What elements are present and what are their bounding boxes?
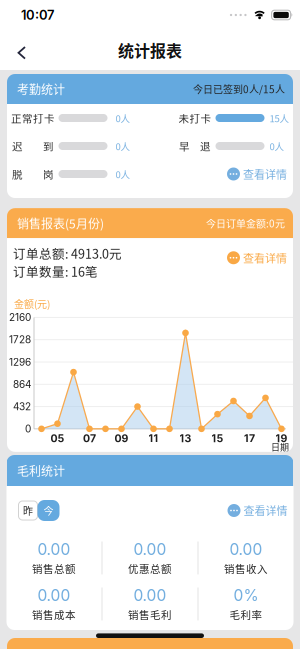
staticText: 0人 bbox=[115, 139, 130, 153]
staticText: 昨 bbox=[23, 503, 33, 518]
staticText: 优惠总额 bbox=[128, 561, 172, 576]
staticText: 864 bbox=[13, 378, 31, 390]
staticText: 查看详情 bbox=[243, 250, 287, 266]
staticText: 2160 bbox=[9, 311, 31, 323]
staticText: 13 bbox=[179, 432, 191, 445]
staticText: 正常打卡 bbox=[11, 110, 55, 126]
staticText: 销售成本 bbox=[32, 607, 76, 622]
button[interactable]: 查看详情 bbox=[227, 250, 287, 266]
staticText: 查看详情 bbox=[243, 166, 287, 182]
staticText: 1728 bbox=[9, 334, 31, 346]
staticText: 17 bbox=[244, 432, 255, 445]
staticText: 销售毛利 bbox=[128, 607, 172, 622]
staticText: 统计报表 bbox=[118, 38, 182, 62]
staticText: 销售总额 bbox=[32, 561, 76, 576]
staticText: 10:07 bbox=[21, 7, 54, 23]
staticText: 19 bbox=[275, 432, 287, 445]
staticText: 1296 bbox=[9, 356, 31, 368]
staticText: 退 bbox=[200, 138, 211, 154]
staticText: 未打卡 bbox=[178, 110, 211, 126]
staticText: 今 bbox=[43, 503, 53, 518]
staticText: 0人 bbox=[115, 167, 130, 181]
staticText: 0 bbox=[25, 423, 31, 435]
staticText: 05 bbox=[50, 432, 64, 445]
staticText: 15人 bbox=[269, 111, 289, 125]
staticText: 07 bbox=[83, 432, 96, 445]
button[interactable]: 今 bbox=[37, 500, 59, 521]
staticText: 到 bbox=[43, 138, 54, 154]
staticText: 0人 bbox=[269, 139, 284, 153]
staticText: 今日已签到0人/15人 bbox=[193, 82, 285, 96]
staticText: 0人 bbox=[115, 111, 130, 125]
staticText: 432 bbox=[13, 400, 31, 413]
staticText: 早 bbox=[179, 138, 190, 154]
staticText: 0.00 bbox=[229, 540, 262, 559]
staticText: 订单数量: 16笔 bbox=[13, 262, 98, 280]
staticText: 09 bbox=[114, 432, 128, 445]
staticText: 订单总额: 4913.0元 bbox=[13, 244, 122, 262]
staticText: 日期 bbox=[271, 440, 289, 453]
staticText: 考勤统计 bbox=[17, 80, 65, 98]
staticText: 0.00 bbox=[133, 540, 166, 559]
button[interactable]: 昨 bbox=[18, 501, 37, 520]
staticText: 迟 bbox=[12, 138, 23, 154]
staticText: 金额(元) bbox=[14, 296, 50, 311]
button[interactable]: 查看详情 bbox=[227, 502, 287, 518]
button[interactable] bbox=[0, 31, 27, 69]
staticText: 今日订单金额:0元 bbox=[206, 216, 285, 230]
staticText: 0.00 bbox=[37, 586, 70, 605]
staticText: 11 bbox=[148, 432, 158, 445]
staticText: 0% bbox=[233, 586, 258, 605]
staticText: 15 bbox=[211, 432, 223, 445]
staticText: 毛利率 bbox=[229, 607, 262, 622]
staticText: 0.00 bbox=[37, 540, 70, 559]
staticText: 查看详情 bbox=[243, 502, 287, 518]
staticText: 销售报表(5月份) bbox=[17, 214, 104, 232]
staticText: 岗 bbox=[43, 166, 54, 182]
staticText: 销售收入 bbox=[224, 561, 268, 576]
staticText: 0.00 bbox=[133, 586, 166, 605]
staticText: 脱 bbox=[12, 166, 23, 182]
staticText: 毛利统计 bbox=[17, 462, 65, 479]
button[interactable]: 查看详情 bbox=[227, 166, 287, 182]
